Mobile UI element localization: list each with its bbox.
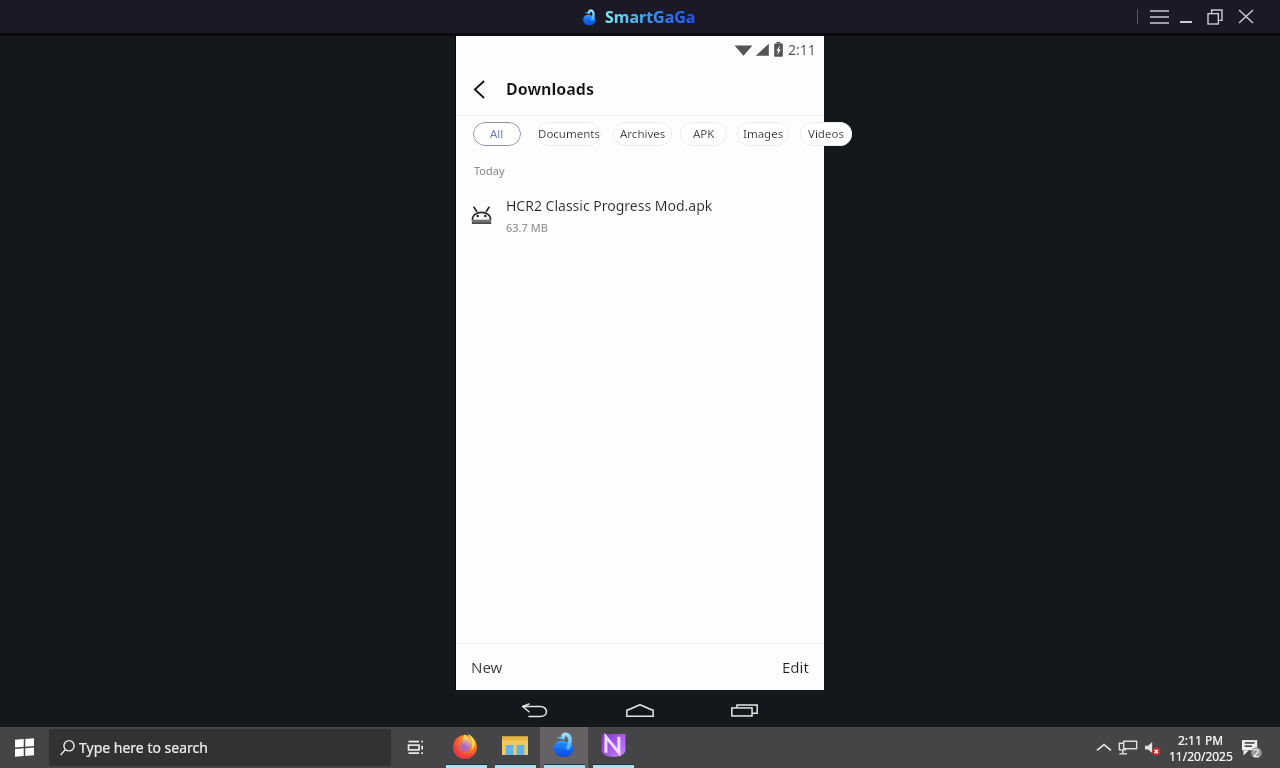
button[interactable]: Menu [1146,0,1172,33]
staticText: APK [693,126,715,142]
button[interactable]: SmartGaGa [540,727,588,768]
staticText: 63.7 MB [506,220,548,235]
staticText: Downloads [506,78,594,100]
staticText: HCR2 Classic Progress Mod.apk [506,196,713,215]
button[interactable]: Maximize [1202,0,1228,33]
button[interactable]: Firefox [442,727,490,768]
button[interactable]: All [473,122,521,146]
button[interactable]: Type here to search [49,729,391,766]
button[interactable]: Videos [800,122,852,146]
button[interactable]: Network [1115,727,1141,768]
button[interactable]: Documents [536,122,601,146]
button[interactable]: Edit [766,644,824,690]
staticText: SmartGaGa [605,6,696,28]
button[interactable]: Volume muted [1139,727,1165,768]
button[interactable]: App [589,727,637,768]
button[interactable]: Notifications [1232,727,1270,768]
staticText: Videos [808,126,844,142]
staticText: Archives [620,126,666,142]
button[interactable]: Back [466,76,492,102]
staticText: Images [743,126,784,142]
staticText: All [490,126,504,142]
button[interactable]: APK [680,122,727,146]
staticText: 2:11 [788,40,816,59]
button[interactable]: Minimize [1173,0,1199,33]
button[interactable]: File Explorer [491,727,539,768]
staticText: Today [474,163,505,178]
button[interactable]: Back [516,698,552,724]
button[interactable]: New [456,644,518,690]
button[interactable]: Start [0,727,48,768]
staticText: Documents [538,126,600,142]
button[interactable]: HCR2 Classic Progress Mod.apk [456,188,824,242]
staticText: 2:11 PM [1178,732,1224,748]
button[interactable]: Images [737,122,789,146]
button[interactable]: Recent apps [726,697,762,723]
staticText: 2 [1253,745,1260,760]
staticText: Type here to search [79,738,208,757]
staticText: 11/20/2025 [1169,748,1233,764]
button[interactable]: Date and time [1167,727,1235,768]
button[interactable]: Archives [613,122,672,146]
staticText: Edit [782,657,809,677]
staticText: New [471,657,503,677]
button[interactable]: Home [622,697,658,723]
button[interactable]: Task View [396,727,436,768]
button[interactable]: Show hidden icons [1091,727,1117,768]
button[interactable]: Close [1233,0,1259,33]
